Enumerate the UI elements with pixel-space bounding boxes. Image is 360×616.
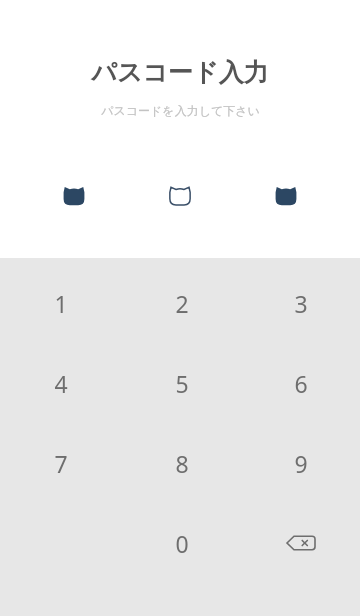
button[interactable]: 9 [242,423,360,503]
staticText: 4 [54,368,68,399]
button[interactable]: 8 [122,423,242,503]
staticText: 6 [294,368,308,399]
staticText: 2 [175,288,189,319]
staticText: 7 [54,448,68,479]
staticText: パスコードを入力して下さい [101,103,260,118]
button[interactable]: 6 [242,343,360,423]
button[interactable]: 0 [122,503,242,583]
staticText: 1 [54,288,68,319]
staticText: 3 [294,288,308,319]
staticText: 9 [294,448,308,479]
button[interactable]: 1 [0,263,122,343]
staticText: 0 [175,528,189,559]
staticText: 5 [175,368,189,399]
button[interactable]: 4 [0,343,122,423]
button[interactable]: 2 [122,263,242,343]
button[interactable]: Delete [242,503,360,583]
button[interactable]: 5 [122,343,242,423]
button[interactable]: 3 [242,263,360,343]
staticText: 8 [175,448,189,479]
button[interactable]: 7 [0,423,122,503]
staticText: パスコード入力 [91,57,269,88]
